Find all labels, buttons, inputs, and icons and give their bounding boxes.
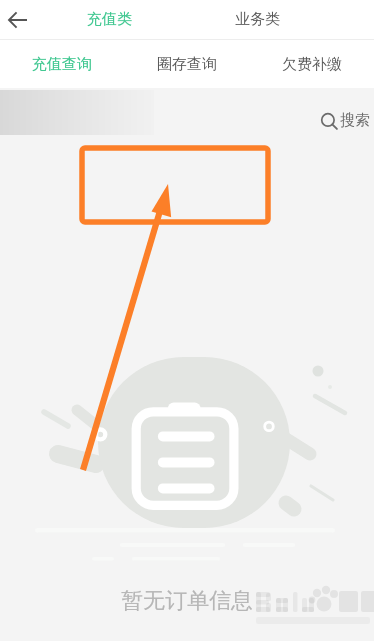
button[interactable]: 欠费补缴 [249,40,374,88]
staticText: 欠费补缴 [282,55,342,74]
staticText: 圈存查询 [157,55,217,74]
button[interactable]: 业务类 [231,4,284,35]
button[interactable]: 充值查询 [0,40,124,88]
staticText: 业务类 [235,10,280,29]
button[interactable]: 圈存查询 [124,40,249,88]
staticText: 充值类 [87,10,132,29]
staticText: 充值查询 [32,55,92,74]
button[interactable]: Back [0,2,36,38]
button[interactable]: 搜索 [320,111,370,130]
staticText: 暂无订单信息 [121,587,253,615]
staticText: 搜索 [340,111,370,130]
button[interactable]: 充值类 [83,4,136,35]
